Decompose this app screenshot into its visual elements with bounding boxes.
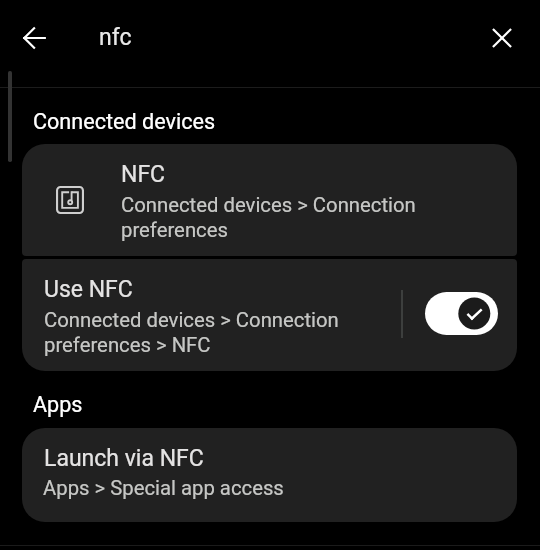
staticText: nfc	[99, 24, 132, 51]
staticText: Apps > Special app access	[43, 476, 284, 500]
button[interactable]: Use NFC	[22, 259, 517, 371]
staticText: Launch via NFC	[44, 445, 204, 472]
button[interactable]: Launch via NFC	[22, 428, 517, 522]
staticText: NFC	[121, 161, 166, 188]
button[interactable]: Clear search	[477, 13, 526, 62]
button[interactable]: Use NFC toggle	[402, 268, 517, 358]
staticText: Use NFC	[44, 276, 133, 303]
button[interactable]: Back	[9, 13, 58, 62]
button[interactable]: NFC	[22, 144, 517, 256]
staticText: Connected devices > Connection preferenc…	[44, 308, 339, 357]
staticText: Connected devices	[33, 109, 216, 134]
staticText: Connected devices > Connection preferenc…	[121, 193, 416, 242]
staticText: Apps	[33, 392, 83, 417]
